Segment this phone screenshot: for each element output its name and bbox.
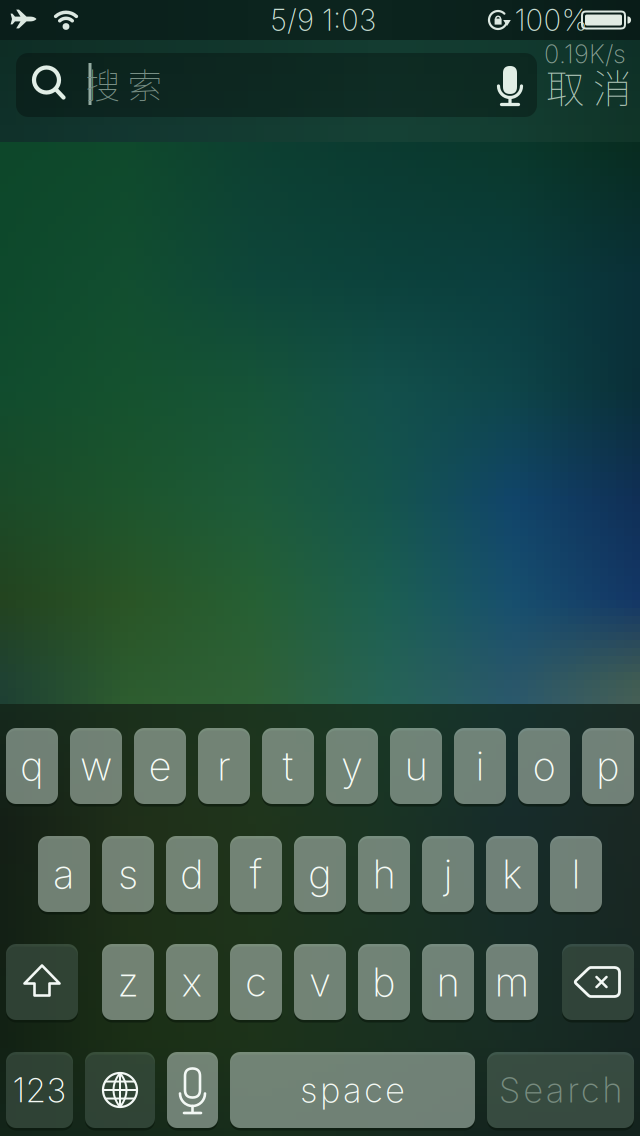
button[interactable]: 123 <box>6 1052 73 1128</box>
button[interactable]: e <box>134 728 186 804</box>
staticText: k <box>502 850 522 898</box>
staticText: t <box>282 742 293 790</box>
button[interactable]: n <box>422 944 474 1020</box>
staticText: u <box>404 742 427 790</box>
button[interactable]: Shift <box>6 944 78 1020</box>
staticText: Search <box>499 1069 622 1111</box>
button[interactable]: j <box>422 836 474 912</box>
staticText: w <box>80 742 112 790</box>
staticText: s <box>118 850 138 898</box>
button[interactable]: g <box>294 836 346 912</box>
staticText: b <box>372 958 396 1006</box>
staticText: l <box>571 850 580 898</box>
button[interactable]: p <box>582 728 634 804</box>
button[interactable]: i <box>454 728 506 804</box>
button[interactable]: d <box>166 836 218 912</box>
button[interactable]: l <box>550 836 602 912</box>
button[interactable]: a <box>38 836 90 912</box>
staticText: f <box>249 850 262 898</box>
button[interactable]: Next keyboard <box>85 1052 155 1128</box>
button[interactable]: b <box>358 944 410 1020</box>
button[interactable]: Dictation <box>167 1052 218 1128</box>
staticText: x <box>181 958 202 1006</box>
button[interactable]: k <box>486 836 538 912</box>
button[interactable]: z <box>102 944 154 1020</box>
button[interactable]: x <box>166 944 218 1020</box>
staticText: i <box>475 742 484 790</box>
staticText: 100% <box>514 2 587 38</box>
staticText: z <box>117 958 138 1006</box>
staticText: a <box>53 850 75 898</box>
staticText: q <box>20 742 44 790</box>
button[interactable]: space <box>230 1052 475 1128</box>
staticText: o <box>532 742 555 790</box>
button[interactable]: s <box>102 836 154 912</box>
staticText: d <box>180 850 204 898</box>
button[interactable]: h <box>358 836 410 912</box>
staticText: m <box>494 958 529 1006</box>
button[interactable]: v <box>294 944 346 1020</box>
staticText: y <box>341 742 363 790</box>
button[interactable]: f <box>230 836 282 912</box>
button[interactable]: w <box>70 728 122 804</box>
button[interactable]: Delete <box>562 944 634 1020</box>
staticText: 搜 索 <box>85 59 162 109</box>
staticText: h <box>372 850 395 898</box>
staticText: r <box>217 742 231 790</box>
staticText: j <box>443 850 452 898</box>
staticText: space <box>300 1069 405 1111</box>
staticText: 123 <box>12 1070 66 1110</box>
button[interactable]: r <box>198 728 250 804</box>
button[interactable]: m <box>486 944 538 1020</box>
staticText: e <box>148 742 171 790</box>
staticText: v <box>309 958 331 1006</box>
button[interactable]: u <box>390 728 442 804</box>
button[interactable]: Search <box>16 53 537 117</box>
button[interactable]: y <box>326 728 378 804</box>
staticText: c <box>245 958 267 1006</box>
button[interactable]: 取 消 <box>546 58 632 114</box>
button[interactable]: c <box>230 944 282 1020</box>
button[interactable]: o <box>518 728 570 804</box>
button[interactable]: Search <box>487 1052 634 1128</box>
staticText: 取 消 <box>546 58 632 114</box>
button[interactable]: t <box>262 728 314 804</box>
button[interactable]: q <box>6 728 58 804</box>
staticText: 0.19K/s <box>544 39 626 69</box>
staticText: 5/9 1:03 <box>270 2 376 38</box>
staticText: n <box>436 958 459 1006</box>
staticText: g <box>308 850 332 898</box>
staticText: p <box>596 742 620 790</box>
